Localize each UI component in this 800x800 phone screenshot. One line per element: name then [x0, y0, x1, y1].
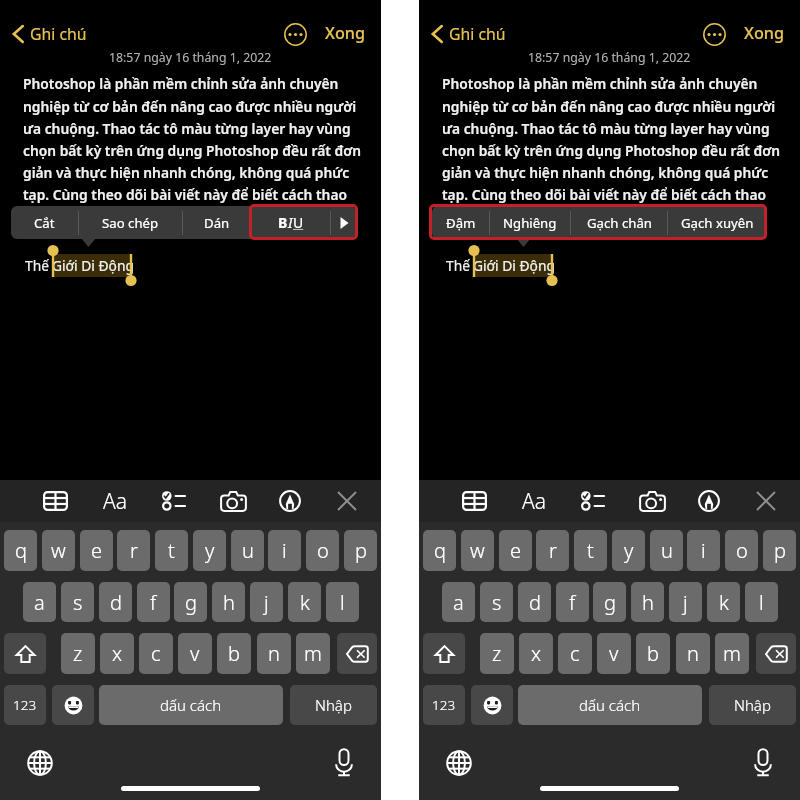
- button[interactable]: z: [480, 633, 514, 674]
- button[interactable]: More options: [284, 23, 307, 46]
- button[interactable]: j: [669, 582, 702, 622]
- button[interactable]: y: [193, 530, 226, 571]
- button[interactable]: l: [326, 582, 359, 622]
- button[interactable]: Markup: [689, 481, 729, 521]
- button[interactable]: 123: [4, 685, 46, 725]
- button[interactable]: Camera: [632, 481, 672, 521]
- button[interactable]: a: [23, 582, 56, 622]
- button[interactable]: t: [155, 530, 188, 571]
- button[interactable]: i: [268, 530, 301, 571]
- button[interactable]: Close: [327, 481, 367, 521]
- button[interactable]: Checklist: [572, 481, 612, 521]
- button[interactable]: f: [137, 582, 170, 622]
- button[interactable]: v: [178, 633, 212, 674]
- button[interactable]: w: [461, 530, 494, 571]
- button[interactable]: v: [597, 633, 631, 674]
- button[interactable]: j: [250, 582, 283, 622]
- button[interactable]: b: [636, 633, 670, 674]
- button[interactable]: r: [117, 530, 150, 571]
- button[interactable]: m: [296, 633, 330, 674]
- button[interactable]: n: [676, 633, 710, 674]
- staticText: 123: [13, 696, 37, 714]
- staticText: b: [647, 640, 659, 667]
- staticText: g: [185, 589, 197, 616]
- button[interactable]: q: [423, 530, 456, 571]
- button[interactable]: Text format: [514, 481, 554, 521]
- button[interactable]: d: [518, 582, 551, 622]
- button[interactable]: g: [174, 582, 207, 622]
- button[interactable]: s: [480, 582, 513, 622]
- button[interactable]: Camera: [213, 481, 253, 521]
- button[interactable]: Xong: [325, 22, 365, 44]
- button[interactable]: Close: [746, 481, 786, 521]
- button[interactable]: m: [715, 633, 749, 674]
- button[interactable]: Gạch xuyên: [668, 206, 766, 239]
- button[interactable]: Switch language: [441, 745, 476, 780]
- button[interactable]: l: [745, 582, 778, 622]
- button[interactable]: Xong: [744, 22, 784, 44]
- button[interactable]: w: [42, 530, 75, 571]
- button[interactable]: q: [4, 530, 37, 571]
- button[interactable]: Dictate: [745, 745, 780, 780]
- button[interactable]: Backspace: [756, 633, 796, 674]
- button[interactable]: Ghi chú: [10, 19, 87, 49]
- button[interactable]: Emoji: [471, 685, 513, 725]
- button[interactable]: Table: [454, 481, 494, 521]
- button[interactable]: h: [212, 582, 245, 622]
- button[interactable]: Checklist: [153, 481, 193, 521]
- button[interactable]: c: [139, 633, 173, 674]
- button[interactable]: o: [725, 530, 758, 571]
- button[interactable]: d: [99, 582, 132, 622]
- button[interactable]: More formatting: [331, 206, 356, 239]
- button[interactable]: u: [650, 530, 683, 571]
- button[interactable]: Đậm: [432, 206, 489, 239]
- staticText: Cắt: [34, 214, 55, 232]
- button[interactable]: k: [707, 582, 740, 622]
- button[interactable]: y: [612, 530, 645, 571]
- button[interactable]: x: [100, 633, 134, 674]
- button[interactable]: Nhập: [709, 685, 796, 725]
- button[interactable]: Gạch chân: [571, 206, 667, 239]
- staticText: k: [719, 589, 729, 616]
- button[interactable]: t: [574, 530, 607, 571]
- button[interactable]: n: [257, 633, 291, 674]
- button[interactable]: More options: [703, 23, 726, 46]
- button[interactable]: b: [217, 633, 251, 674]
- button[interactable]: Shift: [4, 633, 46, 674]
- button[interactable]: p: [763, 530, 796, 571]
- button[interactable]: k: [288, 582, 321, 622]
- button[interactable]: Cắt: [11, 206, 78, 239]
- button[interactable]: z: [61, 633, 95, 674]
- button[interactable]: p: [344, 530, 377, 571]
- button[interactable]: f: [556, 582, 589, 622]
- button[interactable]: Sao chép: [79, 206, 182, 239]
- button[interactable]: dấu cách: [99, 685, 283, 725]
- button[interactable]: a: [442, 582, 475, 622]
- button[interactable]: Dán: [183, 206, 251, 239]
- button[interactable]: c: [558, 633, 592, 674]
- button[interactable]: r: [536, 530, 569, 571]
- button[interactable]: h: [631, 582, 664, 622]
- button[interactable]: dấu cách: [518, 685, 702, 725]
- button[interactable]: Markup: [270, 481, 310, 521]
- button[interactable]: i: [687, 530, 720, 571]
- button[interactable]: 123: [423, 685, 465, 725]
- button[interactable]: Nghiêng: [490, 206, 570, 239]
- button[interactable]: Shift: [423, 633, 465, 674]
- button[interactable]: Ghi chú: [429, 19, 506, 49]
- button[interactable]: o: [306, 530, 339, 571]
- button[interactable]: s: [61, 582, 94, 622]
- button[interactable]: e: [80, 530, 113, 571]
- button[interactable]: u: [231, 530, 264, 571]
- button[interactable]: Switch language: [22, 745, 57, 780]
- button[interactable]: g: [593, 582, 626, 622]
- button[interactable]: Table: [35, 481, 75, 521]
- button[interactable]: Text format: [95, 481, 135, 521]
- button[interactable]: Backspace: [337, 633, 377, 674]
- button[interactable]: Dictate: [326, 745, 361, 780]
- button[interactable]: e: [499, 530, 532, 571]
- button[interactable]: x: [519, 633, 553, 674]
- button[interactable]: Nhập: [290, 685, 377, 725]
- button[interactable]: Emoji: [52, 685, 94, 725]
- button[interactable]: B: [252, 206, 330, 239]
